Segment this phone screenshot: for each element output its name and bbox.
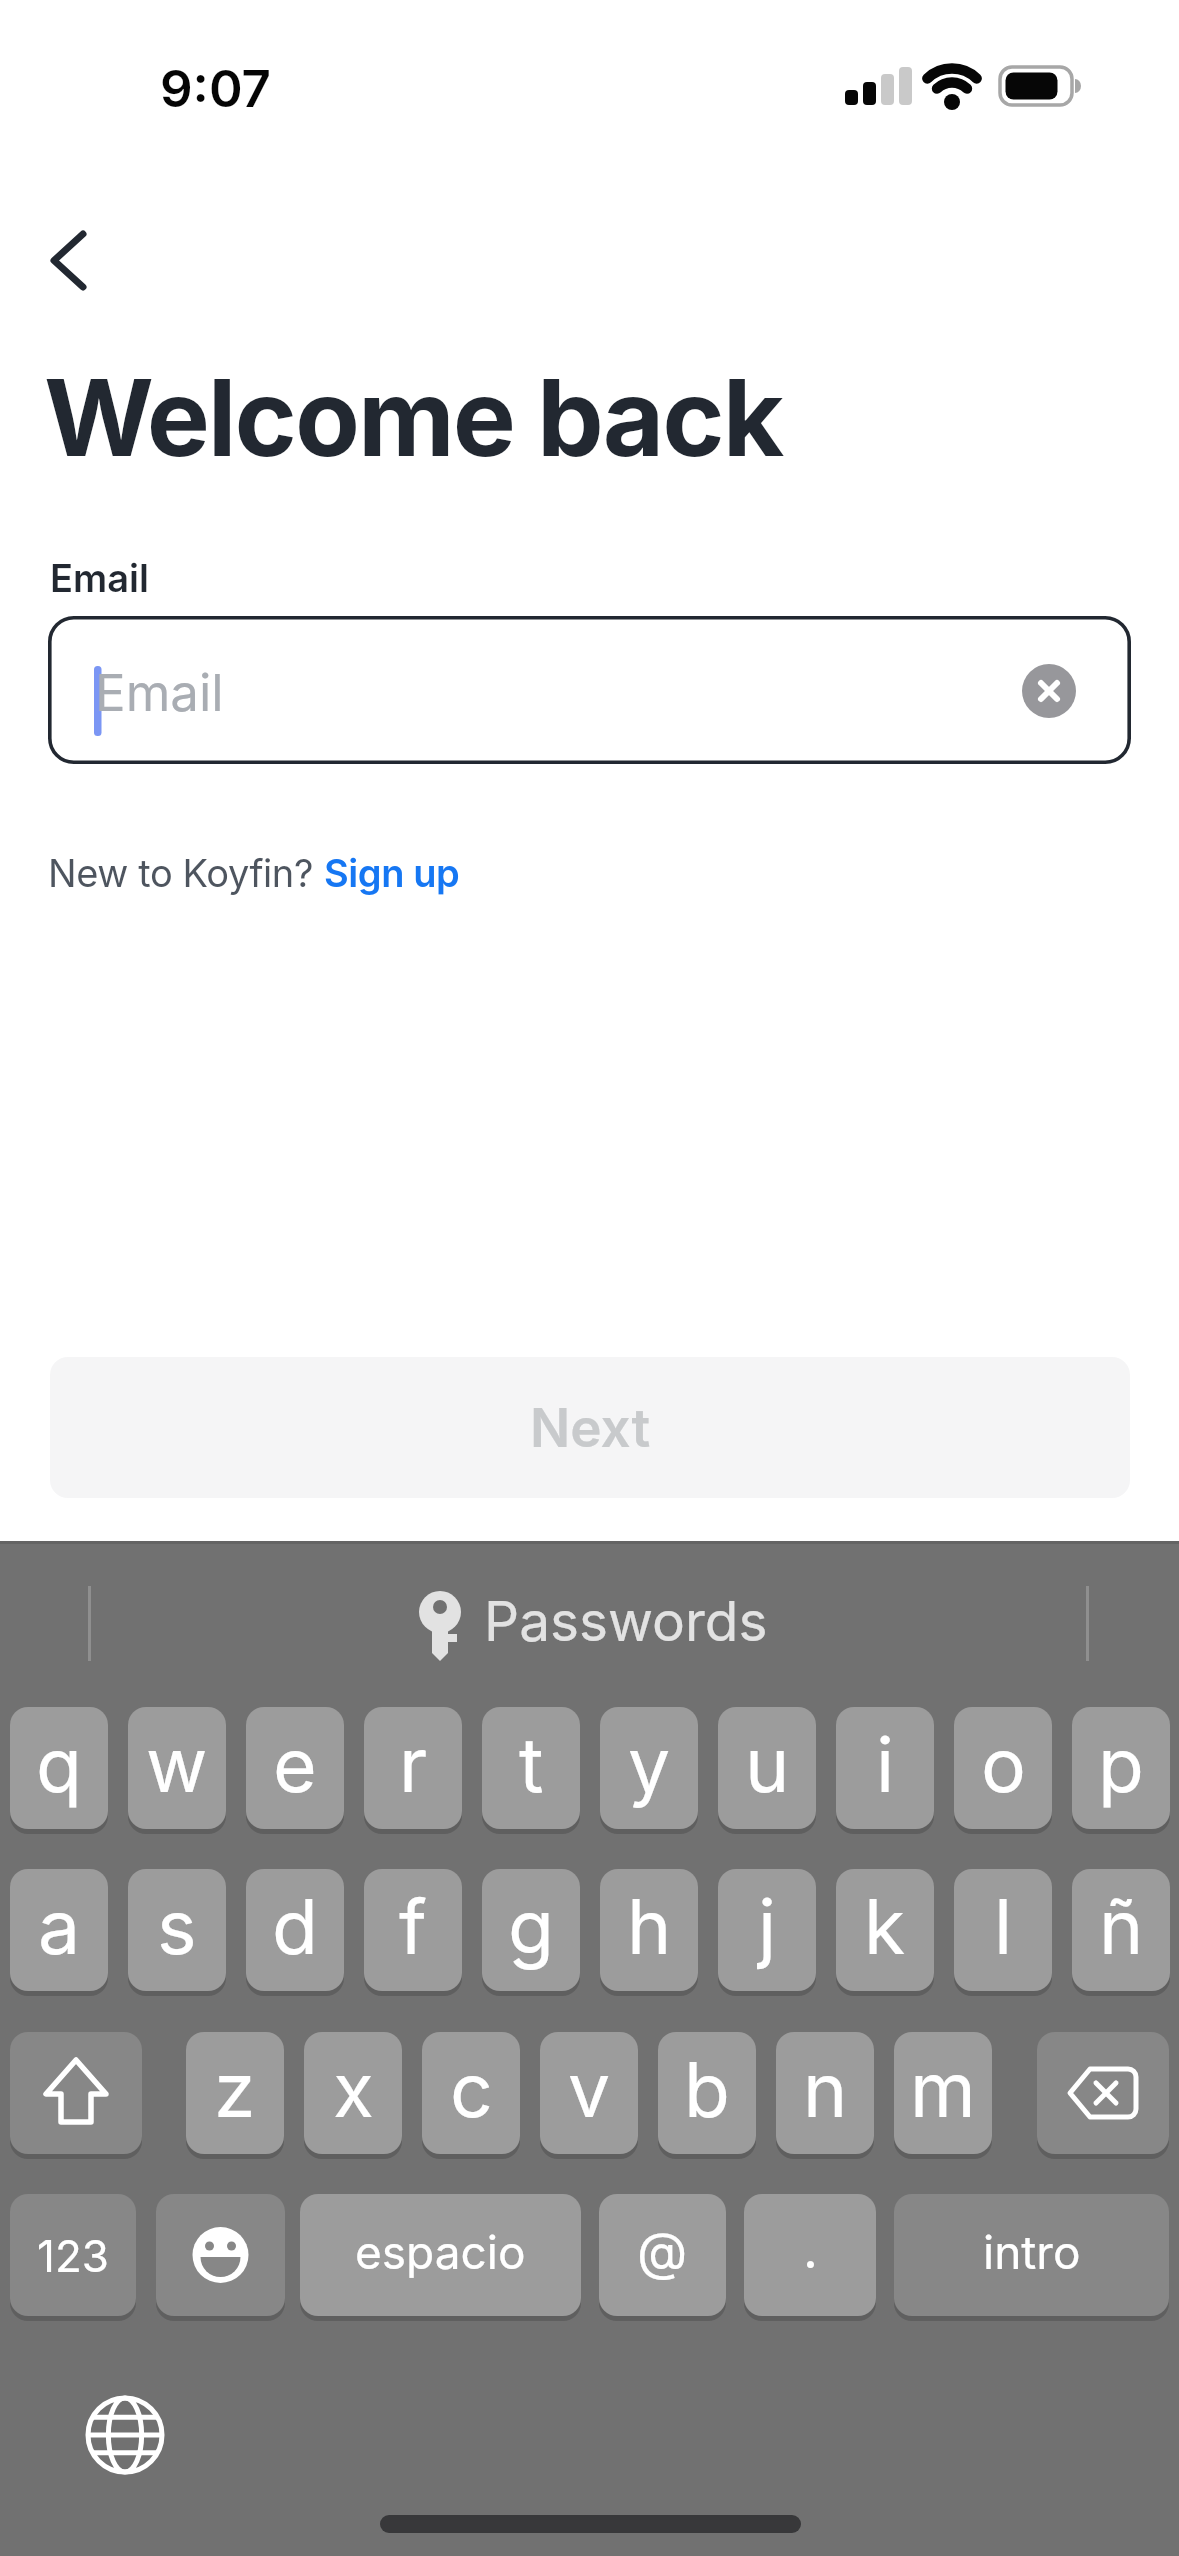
button[interactable]: b bbox=[658, 2032, 756, 2154]
staticText: . bbox=[803, 2218, 818, 2281]
staticText: m bbox=[910, 2044, 976, 2135]
staticText: Passwords bbox=[484, 1588, 768, 1655]
button[interactable]: ñ bbox=[1072, 1869, 1170, 1991]
button[interactable]: t bbox=[482, 1707, 580, 1829]
button[interactable]: d bbox=[246, 1869, 344, 1991]
staticText: p bbox=[1098, 1719, 1144, 1810]
button[interactable]: 123 bbox=[10, 2194, 136, 2316]
button[interactable]: f bbox=[364, 1869, 462, 1991]
button[interactable]: p bbox=[1072, 1707, 1170, 1829]
button[interactable] bbox=[85, 2395, 165, 2475]
staticText: d bbox=[272, 1881, 318, 1972]
staticText: ñ bbox=[1099, 1881, 1144, 1972]
button[interactable]: v bbox=[540, 2032, 638, 2154]
staticText: j bbox=[758, 1881, 777, 1972]
button[interactable] bbox=[10, 2032, 142, 2154]
staticText: i bbox=[876, 1719, 895, 1810]
staticText: v bbox=[568, 2044, 611, 2135]
button[interactable]: k bbox=[836, 1869, 934, 1991]
staticText: f bbox=[399, 1881, 427, 1972]
button[interactable]: x bbox=[304, 2032, 402, 2154]
button[interactable]: q bbox=[10, 1707, 108, 1829]
staticText: k bbox=[864, 1881, 906, 1972]
staticText: t bbox=[519, 1719, 544, 1810]
button[interactable]: g bbox=[482, 1869, 580, 1991]
button[interactable]: m bbox=[894, 2032, 992, 2154]
button[interactable]: h bbox=[600, 1869, 698, 1991]
button[interactable]: a bbox=[10, 1869, 108, 1991]
button[interactable]: o bbox=[954, 1707, 1052, 1829]
staticText: 9:07 bbox=[160, 58, 271, 120]
button[interactable]: n bbox=[776, 2032, 874, 2154]
staticText: @ bbox=[637, 2220, 688, 2283]
staticText: New to Koyfin? bbox=[48, 850, 324, 896]
staticText: a bbox=[38, 1881, 81, 1972]
button[interactable]: z bbox=[186, 2032, 284, 2154]
button[interactable]: Sign up bbox=[324, 850, 460, 896]
staticText: 123 bbox=[37, 2229, 109, 2282]
button[interactable]: @ bbox=[599, 2194, 726, 2316]
button[interactable]: u bbox=[718, 1707, 816, 1829]
button[interactable]: Passwords bbox=[484, 1586, 784, 1656]
button[interactable]: . bbox=[744, 2194, 876, 2316]
button[interactable] bbox=[40, 220, 100, 300]
staticText: Next bbox=[530, 1396, 651, 1460]
staticText: y bbox=[628, 1719, 671, 1810]
button[interactable] bbox=[1022, 664, 1076, 718]
staticText: Welcome back bbox=[44, 353, 783, 481]
button[interactable]: e bbox=[246, 1707, 344, 1829]
staticText: o bbox=[981, 1719, 1026, 1810]
button[interactable]: r bbox=[364, 1707, 462, 1829]
staticText: l bbox=[994, 1881, 1013, 1972]
staticText: intro bbox=[983, 2224, 1081, 2280]
staticText: espacio bbox=[355, 2224, 526, 2280]
staticText: s bbox=[157, 1881, 197, 1972]
button[interactable]: w bbox=[128, 1707, 226, 1829]
staticText: q bbox=[36, 1719, 82, 1810]
button[interactable]: Email bbox=[48, 616, 1131, 764]
staticText: e bbox=[273, 1719, 317, 1810]
staticText: u bbox=[745, 1719, 790, 1810]
staticText: Email bbox=[95, 662, 224, 724]
button[interactable]: espacio bbox=[300, 2194, 581, 2316]
staticText: w bbox=[146, 1719, 208, 1810]
staticText: Email bbox=[50, 555, 149, 601]
button[interactable]: l bbox=[954, 1869, 1052, 1991]
staticText: z bbox=[214, 2044, 256, 2135]
staticText: b bbox=[684, 2044, 730, 2135]
button[interactable]: s bbox=[128, 1869, 226, 1991]
staticText: c bbox=[450, 2044, 493, 2135]
staticText: r bbox=[399, 1719, 428, 1810]
staticText: n bbox=[803, 2044, 848, 2135]
button[interactable]: intro bbox=[894, 2194, 1169, 2316]
button[interactable]: c bbox=[422, 2032, 520, 2154]
button[interactable]: y bbox=[600, 1707, 698, 1829]
button[interactable] bbox=[156, 2194, 285, 2316]
button[interactable]: j bbox=[718, 1869, 816, 1991]
staticText: x bbox=[333, 2044, 374, 2135]
button[interactable] bbox=[1037, 2032, 1169, 2154]
staticText: g bbox=[508, 1881, 554, 1972]
button[interactable]: i bbox=[836, 1707, 934, 1829]
staticText: h bbox=[627, 1881, 672, 1972]
button[interactable]: Next bbox=[50, 1357, 1130, 1498]
